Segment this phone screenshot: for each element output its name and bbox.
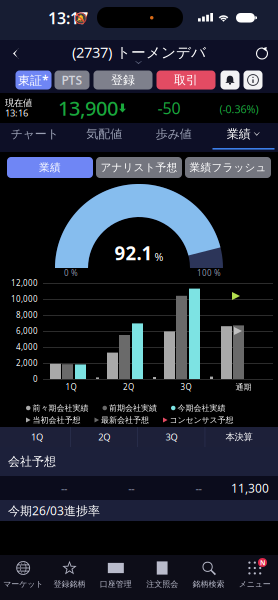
button[interactable]: Back [2,40,30,67]
button[interactable]: 東証* [15,70,51,89]
staticText: チャート [11,127,59,141]
staticText: 当初会社予想 [30,415,80,425]
staticText: -50 [157,97,180,119]
staticText: -- [128,481,134,495]
staticText: 東証* [18,72,49,88]
staticText: 歩み値 [156,127,192,141]
button[interactable]: 気配値 [69,123,139,152]
staticText: 11,300 [231,480,269,496]
staticText: 2Q [123,382,134,392]
staticText: (2737) トーメンデバ [72,42,206,62]
button[interactable]: 取引 [156,70,215,89]
staticText: 注文照会 [146,579,178,589]
staticText: アナリスト予想 [100,161,177,174]
staticText: 業績 [39,161,61,174]
staticText: 2Q [98,431,110,443]
staticText: 6,000 [16,326,38,336]
button[interactable]: 注文照会 [139,555,185,600]
button[interactable]: Alerts [220,70,239,89]
button[interactable]: PTS [54,70,89,89]
button[interactable]: Information [243,70,262,89]
staticText: 92.1 [114,241,152,265]
button[interactable]: 歩み値 [139,123,208,152]
staticText: 今期会社実績 [175,403,225,413]
staticText: 🔕 [73,12,86,24]
button[interactable]: メニュー [232,555,278,600]
staticText: 13:16 [5,107,28,119]
staticText: (-0.36%) [219,102,258,116]
staticText: 口座管理 [100,579,132,589]
staticText: % [154,250,163,264]
button[interactable]: 銘柄検索 [185,555,232,600]
button[interactable]: アナリスト予想 [96,157,182,178]
button[interactable]: 業績 [7,157,93,178]
staticText: 登録銘柄 [53,579,85,589]
staticText: 通期 [235,382,251,392]
staticText: N [260,558,265,567]
staticText: 3Q [166,431,178,443]
staticText: 今期26/03進捗率 [8,502,100,518]
staticText: 取引 [174,73,198,87]
button[interactable]: 口座管理 [93,555,139,600]
staticText: 現在値 [5,97,32,109]
staticText: 登録 [111,73,135,87]
staticText: 会社予想 [8,454,56,469]
staticText: コンセンサス予想 [167,415,233,425]
staticText: 本決算 [225,431,252,443]
staticText: 100 % [197,268,221,278]
button[interactable]: Refresh [248,40,276,67]
staticText: 13:17 [48,7,88,29]
staticText: 1Q [31,431,43,443]
staticText: 12,000 [11,278,38,288]
staticText: 1Q [65,382,76,392]
button[interactable]: 登録 [93,70,152,89]
staticText: 業績 [227,127,251,141]
staticText: 最新会社予想 [99,415,149,425]
staticText: 8,000 [16,310,38,320]
staticText: 前期会社実績 [107,403,157,413]
staticText: 4,000 [16,342,38,352]
button[interactable]: 業績 [208,123,278,152]
staticText: マーケット [3,579,43,589]
staticText: 前々期会社実績 [30,403,88,413]
button[interactable]: 業績フラッシュ [185,157,271,178]
staticText: -- [196,481,202,495]
button[interactable]: マーケット [0,555,46,600]
staticText: 3Q [180,382,191,392]
staticText: 気配値 [86,127,122,141]
button[interactable]: チャート [0,123,69,152]
staticText: 2,000 [16,358,38,368]
button[interactable]: 登録銘柄 [46,555,93,600]
staticText: -- [61,481,67,495]
staticText: 銘柄検索 [192,579,224,589]
staticText: 0 % [64,268,78,278]
staticText: 業績フラッシュ [189,161,266,174]
staticText: 13,900 [58,95,118,121]
staticText: 0 [33,374,38,384]
staticText: 10,000 [11,294,38,304]
staticText: PTS [61,72,82,88]
staticText: メニュー [239,579,271,589]
